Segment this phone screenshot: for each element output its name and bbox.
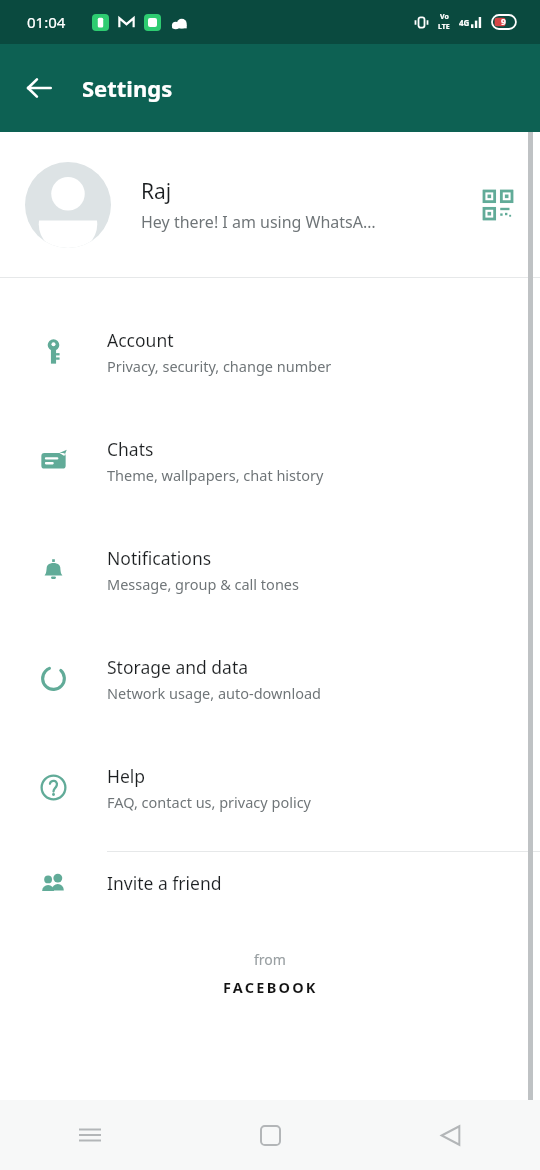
staticText: Invite a friend [107,871,222,895]
button[interactable]: Recent apps [0,1100,180,1170]
staticText: FAQ, contact us, privacy policy [107,792,311,812]
staticText: Theme, wallpapers, chat history [107,465,324,485]
button[interactable]: Help [0,733,540,842]
button[interactable]: Raj [0,132,540,277]
staticText: from [254,950,286,969]
staticText: Hey there! I am using WhatsA… [141,211,376,233]
staticText: LTE [438,22,450,32]
staticText: Privacy, security, change number [107,356,332,376]
staticText: FACEBOOK [223,977,318,997]
button[interactable]: Back [360,1100,540,1170]
staticText: Chats [107,437,154,461]
staticText: Help [107,764,146,788]
staticText: Raj [141,177,172,206]
staticText: Notifications [107,546,212,570]
button[interactable]: QR code [476,183,520,227]
staticText: Account [107,328,174,352]
staticText: Storage and data [107,655,249,679]
staticText: Settings [82,73,173,103]
staticText: 9 [501,16,506,28]
staticText: Vo [440,12,449,22]
staticText: 4G [459,17,470,28]
button[interactable]: Back [12,61,66,115]
button[interactable]: Storage and data [0,624,540,733]
button[interactable]: Invite a friend [0,852,540,914]
button[interactable]: Account [0,297,540,406]
staticText: 01:04 [27,12,66,32]
button[interactable]: Home [180,1100,360,1170]
staticText: Network usage, auto-download [107,683,321,703]
staticText: Message, group & call tones [107,574,299,594]
button[interactable]: Notifications [0,515,540,624]
button[interactable]: Chats [0,406,540,515]
